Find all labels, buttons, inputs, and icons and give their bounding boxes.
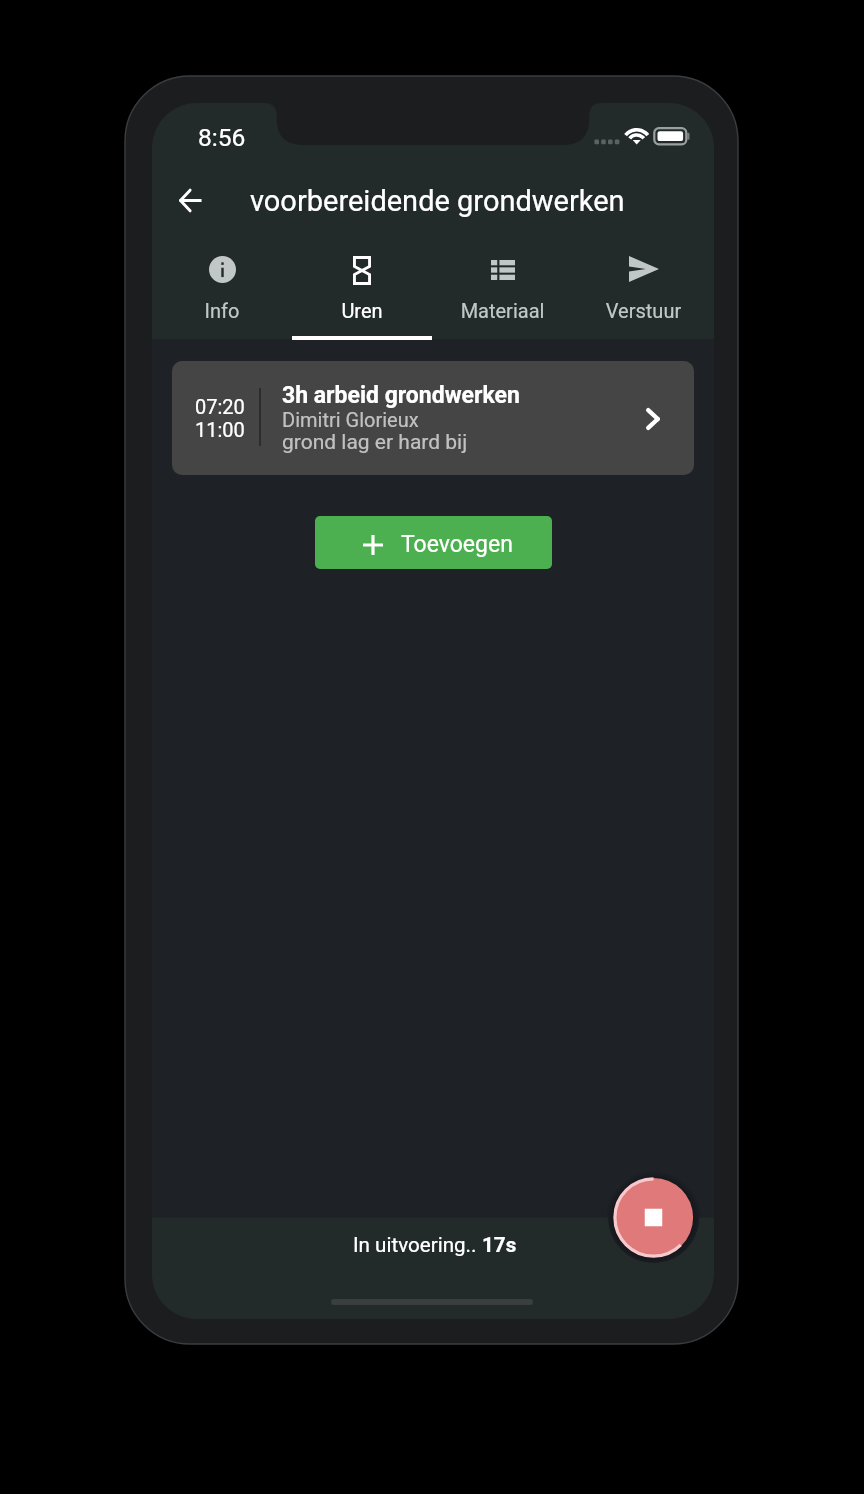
staticText: 3h arbeid grondwerken (282, 382, 520, 409)
staticText: Uren (292, 299, 432, 322)
button[interactable]: Stop timer (610, 1174, 697, 1261)
button[interactable]: Toevoegen (315, 516, 552, 569)
staticText: 8:56 (198, 123, 246, 152)
staticText: grond lag er hard bij (282, 430, 468, 455)
button[interactable]: 07:20 (172, 361, 694, 475)
button[interactable]: Verstuur (573, 237, 714, 339)
staticText: In uitvoering.. (353, 1233, 482, 1257)
button[interactable]: Materiaal (432, 237, 573, 339)
staticText: 07:20 (195, 395, 245, 418)
staticText: voorbereidende grondwerken (250, 184, 625, 218)
staticText: 17s (482, 1233, 517, 1257)
button[interactable]: Back (165, 175, 215, 225)
button[interactable]: Info (152, 237, 292, 339)
button[interactable]: Uren (292, 237, 432, 339)
staticText: Info (152, 299, 292, 322)
staticText: 11:00 (195, 418, 245, 441)
staticText: Dimitri Glorieux (282, 408, 419, 431)
staticText: Materiaal (432, 299, 573, 322)
staticText: Toevoegen (401, 531, 513, 558)
staticText: Verstuur (573, 299, 714, 322)
